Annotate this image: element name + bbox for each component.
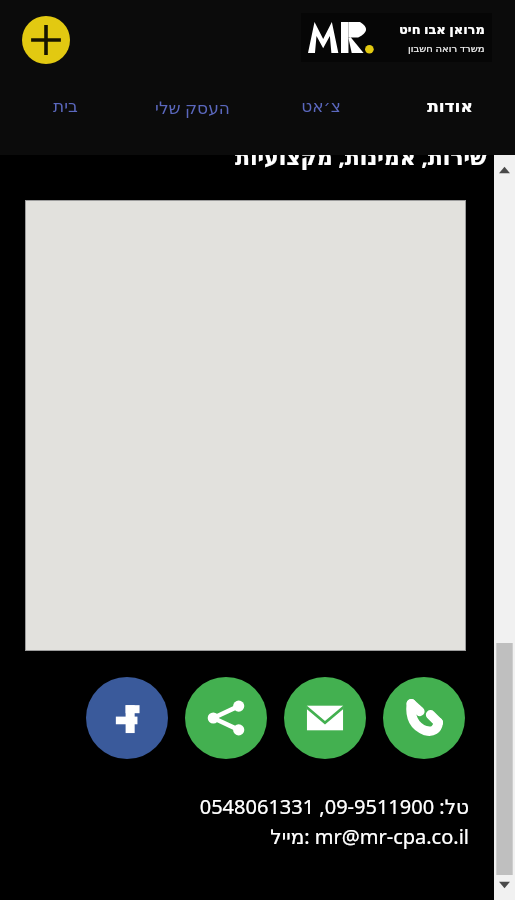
button[interactable]: Email — [284, 677, 366, 759]
staticText: העסק שלי — [155, 96, 230, 119]
button[interactable]: העסק שלי — [130, 96, 254, 140]
staticText: מייל: mr@mr-cpa.co.il — [270, 823, 469, 850]
staticText: צ׳אט — [301, 96, 341, 116]
staticText: טל: 09-9511900, 0548061331 — [199, 793, 469, 820]
button[interactable]: Facebook — [86, 677, 168, 759]
staticText: משרד רואה חשבון — [408, 41, 485, 55]
button[interactable]: Call — [383, 677, 465, 759]
button[interactable]: אודות — [388, 96, 512, 140]
button[interactable]: צ׳אט — [259, 96, 383, 140]
button[interactable]: Add — [22, 16, 70, 64]
staticText: שירות, אמינות, מקצועיות — [235, 155, 487, 171]
button[interactable]: Share — [185, 677, 267, 759]
staticText: אודות — [427, 96, 473, 116]
staticText: מרואן אבו חיט — [399, 20, 485, 38]
staticText: בית — [53, 96, 78, 116]
button[interactable]: בית — [3, 96, 127, 140]
button[interactable]: MR accounting logo — [301, 13, 492, 62]
